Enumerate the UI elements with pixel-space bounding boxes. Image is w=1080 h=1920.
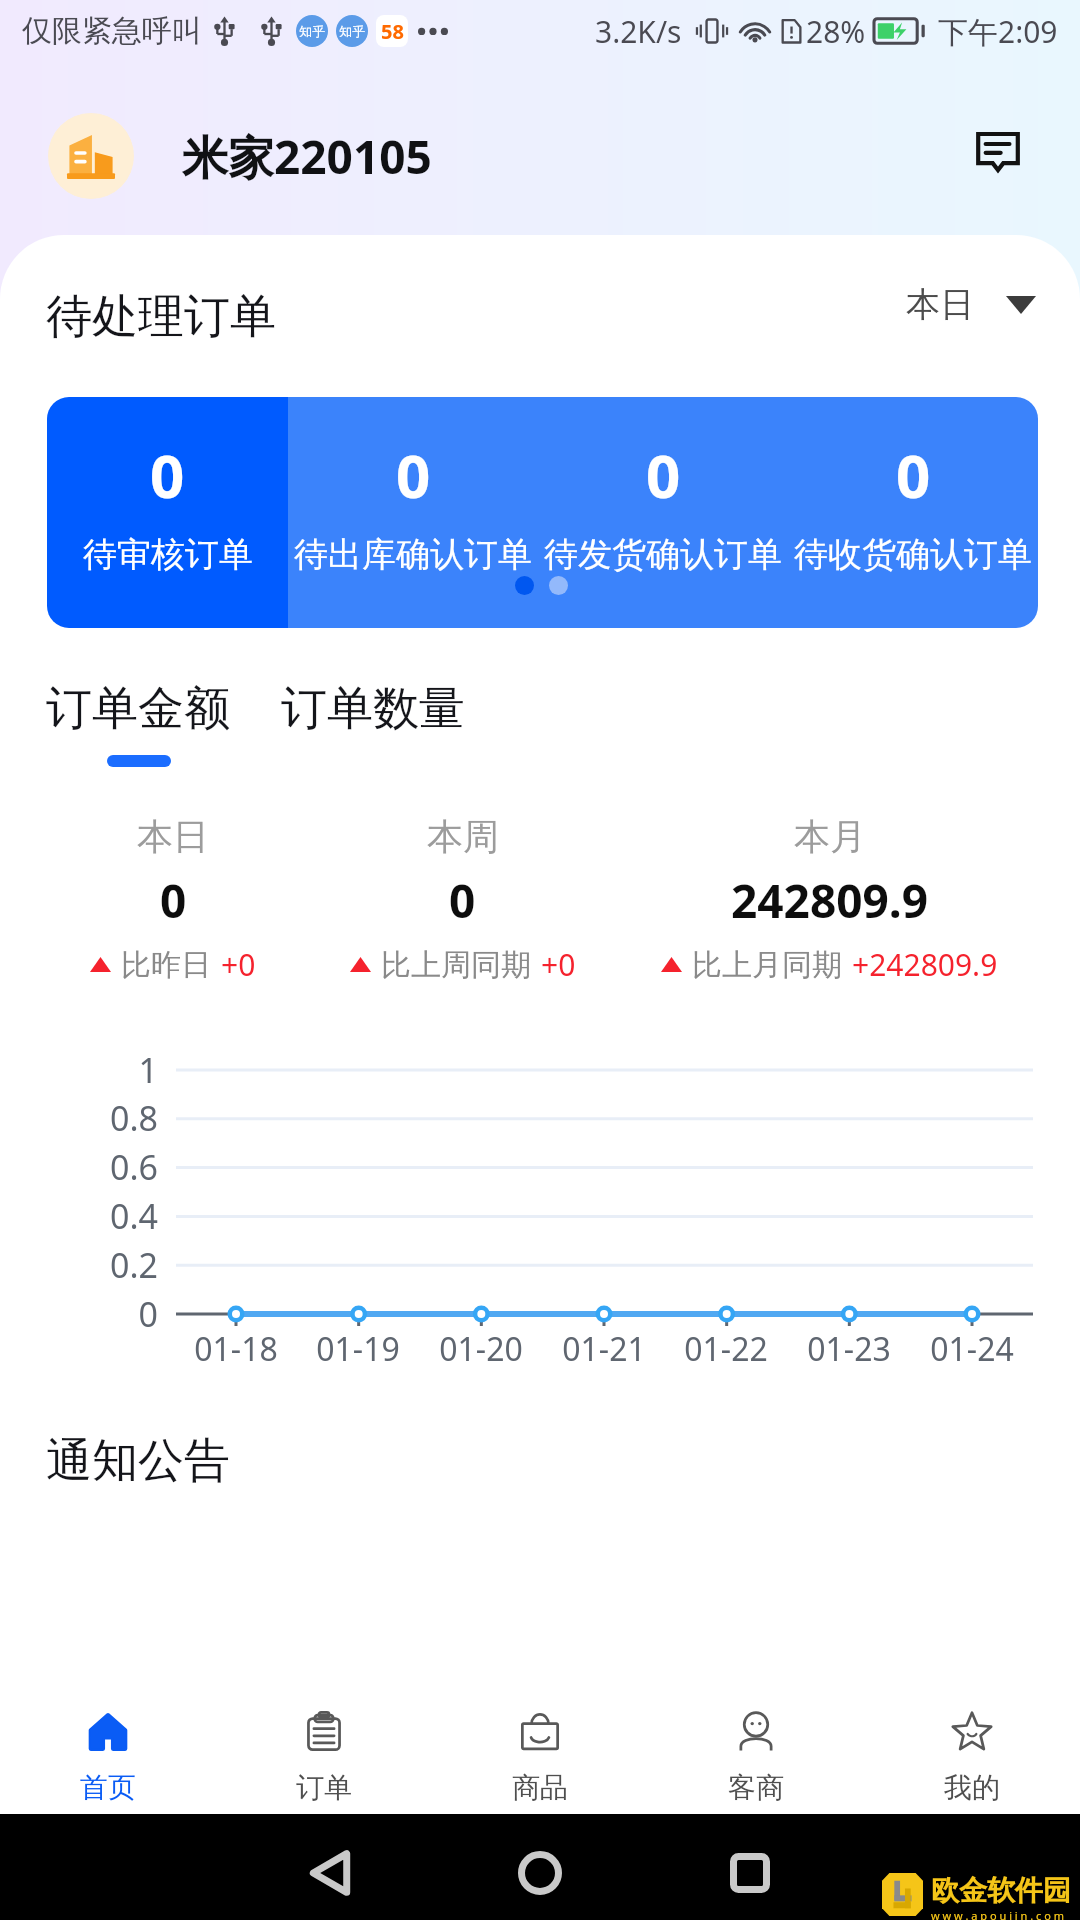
staticText: 欧金软件园	[931, 1873, 1071, 1908]
button[interactable]: 本日	[906, 277, 1036, 332]
staticText: 待审核订单	[83, 533, 253, 576]
staticText: 0	[160, 869, 187, 932]
button[interactable]: Recents	[710, 1833, 790, 1913]
button[interactable]: 首页	[0, 1660, 216, 1814]
staticText: 0	[150, 434, 185, 516]
button[interactable]: 0	[288, 397, 538, 628]
staticText: 3.2K/s	[595, 11, 682, 52]
staticText: 知乎	[299, 23, 325, 39]
staticText: 01-22	[684, 1327, 768, 1367]
staticText: 本日	[906, 283, 974, 326]
staticText: 0	[138, 1291, 158, 1337]
staticText: +0	[221, 944, 256, 985]
staticText: 客商	[728, 1770, 784, 1805]
staticText: 0.8	[109, 1095, 158, 1141]
staticText: 订单数量	[281, 680, 465, 738]
staticText: 0	[896, 434, 931, 516]
button[interactable]: 0	[47, 397, 288, 628]
staticText: 比上月同期	[692, 946, 842, 984]
staticText: 订单	[296, 1770, 352, 1805]
staticText: 比上周同期	[381, 946, 531, 984]
staticText: 0	[646, 434, 681, 516]
staticText: 通知公告	[46, 1432, 230, 1490]
staticText: +0	[541, 944, 576, 985]
staticText: 01-23	[807, 1327, 891, 1367]
staticText: 待收货确认订单	[794, 533, 1032, 576]
staticText: w w w . a p o u j i n . c o m	[931, 1908, 1064, 1920]
staticText: 商品	[512, 1770, 568, 1805]
button[interactable]: Home	[500, 1833, 580, 1913]
staticText: 58	[381, 18, 404, 45]
button[interactable]: Back	[290, 1833, 370, 1913]
staticText: +242809.9	[852, 944, 998, 985]
staticText: 我的	[944, 1770, 1000, 1805]
staticText: 待处理订单	[46, 288, 276, 346]
button[interactable]: 订单金额	[40, 676, 236, 742]
button[interactable]: Messages	[960, 118, 1036, 194]
staticText: 知乎	[339, 23, 365, 39]
button[interactable]: 订单	[216, 1660, 432, 1814]
staticText: 01-21	[562, 1327, 646, 1367]
staticText: 本月	[794, 814, 866, 859]
staticText: 本日	[137, 814, 209, 859]
staticText: 米家220105	[182, 125, 432, 188]
staticText: 1	[138, 1047, 158, 1093]
staticText: 0	[449, 869, 476, 932]
button[interactable]: 0	[538, 397, 788, 628]
staticText: 0	[396, 434, 431, 516]
button[interactable]: 我的	[864, 1660, 1080, 1814]
staticText: 首页	[80, 1770, 136, 1805]
staticText: 01-19	[316, 1327, 400, 1367]
button[interactable]: 商品	[432, 1660, 648, 1814]
staticText: 0.4	[109, 1193, 158, 1239]
staticText: 比昨日	[121, 946, 211, 984]
staticText: 01-20	[439, 1327, 523, 1367]
staticText: 28%	[806, 11, 866, 52]
staticText: 01-18	[194, 1327, 278, 1367]
staticText: 01-24	[930, 1327, 1014, 1367]
staticText: 0.2	[109, 1242, 158, 1288]
staticText: 待出库确认订单	[294, 533, 532, 576]
button[interactable]: 订单数量	[275, 676, 471, 742]
button[interactable]: 客商	[648, 1660, 864, 1814]
staticText: 本周	[427, 814, 499, 859]
staticText: 242809.9	[731, 869, 929, 932]
staticText: 仅限紧急呼叫	[22, 12, 202, 50]
staticText: 订单金额	[46, 680, 230, 738]
staticText: 待发货确认订单	[544, 533, 782, 576]
button[interactable]: 0	[788, 397, 1038, 628]
staticText: 下午2:09	[938, 11, 1058, 52]
staticText: 0.6	[109, 1144, 158, 1190]
